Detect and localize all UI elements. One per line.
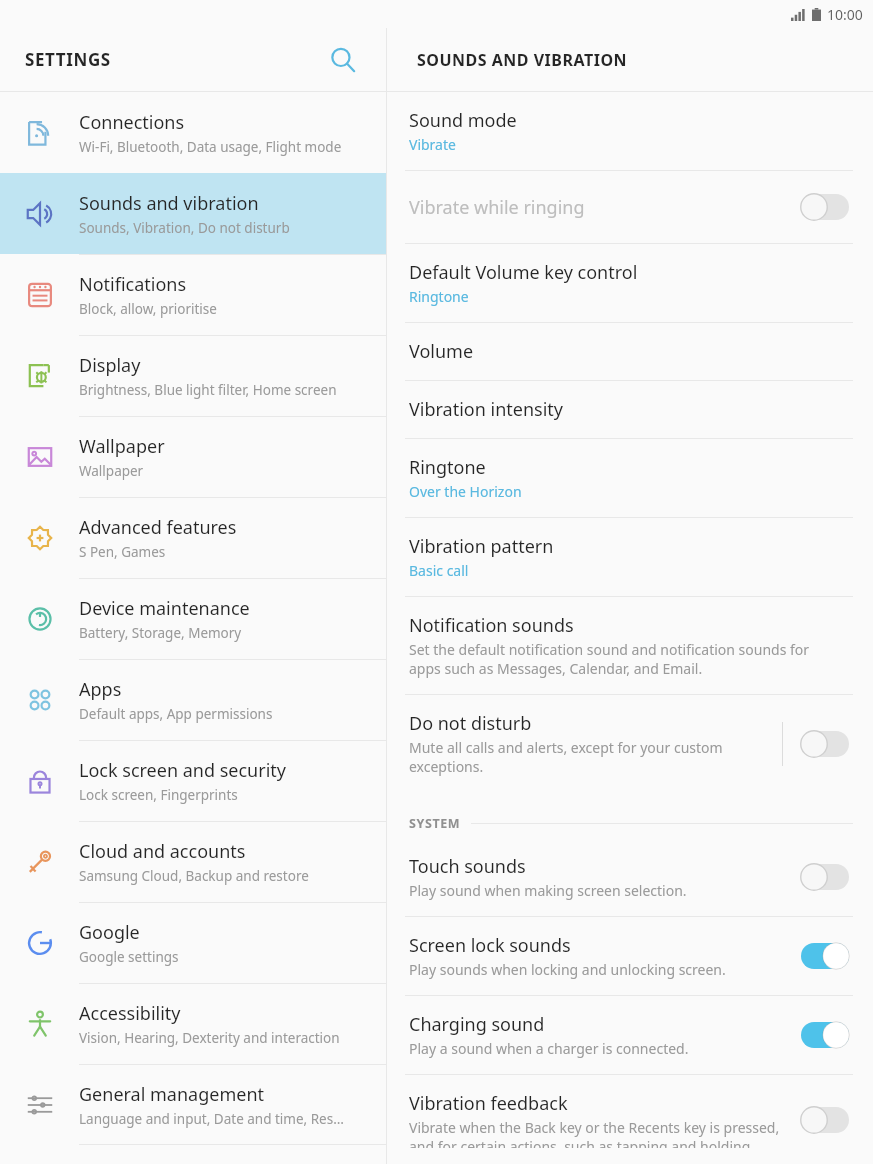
staticText: Vibration feedback <box>409 1091 568 1116</box>
button[interactable]: Touch sounds <box>797 857 853 897</box>
staticText: Set the default notification sound and n… <box>409 640 810 678</box>
button[interactable]: Sound mode <box>387 92 873 170</box>
button[interactable]: Connections <box>0 92 386 173</box>
staticText: Notifications <box>79 272 187 297</box>
staticText: Google <box>79 920 140 945</box>
button[interactable]: Device maintenance <box>0 578 386 659</box>
staticText: Wallpaper <box>79 434 165 459</box>
staticText: Basic call <box>409 561 469 580</box>
staticText: Connections <box>79 110 185 135</box>
staticText: Vibrate <box>409 135 456 154</box>
button[interactable]: Wallpaper <box>0 416 386 497</box>
button[interactable]: Advanced features <box>0 497 386 578</box>
button[interactable]: Touch sounds <box>387 838 873 916</box>
staticText: Google settings <box>79 948 179 966</box>
staticText: Samsung Cloud, Backup and restore <box>79 867 309 885</box>
staticText: Cloud and accounts <box>79 839 246 864</box>
button[interactable]: Cloud and accounts <box>0 821 386 902</box>
button[interactable]: Charging sound <box>797 1015 853 1055</box>
staticText: Charging sound <box>409 1012 545 1037</box>
staticText: Over the Horizon <box>409 482 522 501</box>
staticText: Vibration intensity <box>409 397 564 422</box>
button[interactable]: Volume <box>387 323 873 380</box>
button[interactable]: Vibration feedback <box>387 1075 873 1164</box>
staticText: Language and input, Date and time, Res… <box>79 1110 344 1128</box>
button[interactable]: Do not disturb <box>387 695 873 792</box>
button[interactable]: General management <box>0 1064 386 1145</box>
button[interactable]: Vibration intensity <box>387 381 873 438</box>
staticText: Vision, Hearing, Dexterity and interacti… <box>79 1029 340 1047</box>
staticText: Default Volume key control <box>409 260 638 285</box>
button[interactable]: Default Volume key control <box>387 244 873 322</box>
staticText: Apps <box>79 677 122 702</box>
button[interactable]: Vibrate while ringing <box>797 187 853 227</box>
button[interactable]: Screen lock sounds <box>797 936 853 976</box>
staticText: Advanced features <box>79 515 237 540</box>
button[interactable]: Apps <box>0 659 386 740</box>
button[interactable]: Vibration pattern <box>387 518 873 596</box>
button[interactable]: Sounds and vibration <box>0 173 386 254</box>
staticText: Ringtone <box>409 455 486 480</box>
button[interactable]: Charging sound <box>387 996 873 1074</box>
staticText: S Pen, Games <box>79 543 166 561</box>
staticText: Accessibility <box>79 1001 181 1026</box>
staticText: Vibrate when the Back key or the Recents… <box>409 1118 780 1148</box>
staticText: Mute all calls and alerts, except for yo… <box>409 738 723 776</box>
staticText: SYSTEM <box>409 815 461 832</box>
staticText: Lock screen, Fingerprints <box>79 786 238 804</box>
button[interactable]: Notification sounds <box>387 597 873 694</box>
staticText: General management <box>79 1082 265 1107</box>
button[interactable]: Accessibility <box>0 983 386 1064</box>
staticText: Battery, Storage, Memory <box>79 624 242 642</box>
staticText: Volume <box>409 339 474 364</box>
button[interactable]: Do not disturb <box>797 724 853 764</box>
staticText: Sounds and vibration <box>79 191 259 216</box>
staticText: Screen lock sounds <box>409 933 571 958</box>
staticText: SOUNDS AND VIBRATION <box>417 49 628 71</box>
staticText: 10:00 <box>827 5 863 24</box>
staticText: Ringtone <box>409 287 469 306</box>
staticText: Lock screen and security <box>79 758 286 783</box>
staticText: Do not disturb <box>409 711 532 736</box>
staticText: Block, allow, prioritise <box>79 300 217 318</box>
staticText: Play sound when making screen selection. <box>409 881 687 900</box>
button[interactable]: Display <box>0 335 386 416</box>
staticText: Brightness, Blue light filter, Home scre… <box>79 381 337 399</box>
button[interactable]: Vibrate while ringing <box>387 171 873 243</box>
staticText: SETTINGS <box>25 48 111 71</box>
staticText: Play sounds when locking and unlocking s… <box>409 960 726 979</box>
staticText: Notification sounds <box>409 613 574 638</box>
staticText: Wi-Fi, Bluetooth, Data usage, Flight mod… <box>79 138 342 156</box>
button[interactable]: Vibration feedback <box>797 1100 853 1140</box>
staticText: Sounds, Vibration, Do not disturb <box>79 219 290 237</box>
staticText: Vibrate while ringing <box>409 195 585 220</box>
button[interactable]: Ringtone <box>387 439 873 517</box>
staticText: Wallpaper <box>79 462 144 480</box>
button[interactable]: Lock screen and security <box>0 740 386 821</box>
button[interactable]: Notifications <box>0 254 386 335</box>
staticText: Play a sound when a charger is connected… <box>409 1039 689 1058</box>
button[interactable]: Search <box>323 40 363 80</box>
staticText: Display <box>79 353 141 378</box>
staticText: Vibration pattern <box>409 534 554 559</box>
staticText: Sound mode <box>409 108 517 133</box>
button[interactable]: Google <box>0 902 386 983</box>
staticText: Default apps, App permissions <box>79 705 273 723</box>
staticText: Device maintenance <box>79 596 250 621</box>
button[interactable]: Screen lock sounds <box>387 917 873 995</box>
staticText: Touch sounds <box>409 854 526 879</box>
